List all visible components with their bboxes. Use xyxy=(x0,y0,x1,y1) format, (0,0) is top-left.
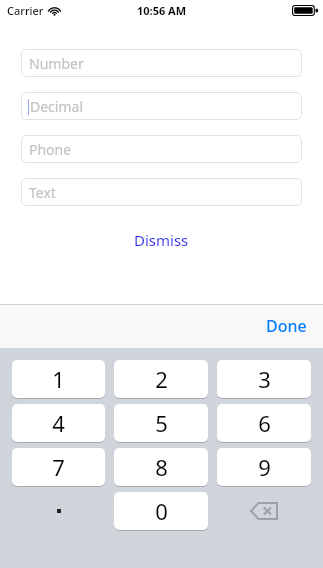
staticText: 4 xyxy=(52,408,65,438)
button[interactable]: Done xyxy=(256,309,317,343)
staticText: 9 xyxy=(258,452,271,482)
button[interactable]: Number xyxy=(21,49,302,77)
staticText: 0 xyxy=(155,496,168,526)
button[interactable]: Decimal xyxy=(21,92,302,120)
staticText: 5 xyxy=(155,408,168,438)
staticText: Done xyxy=(266,315,307,337)
staticText: Carrier xyxy=(7,3,44,18)
staticText: 6 xyxy=(258,408,271,438)
button[interactable]: Delete xyxy=(217,492,311,530)
staticText: Phone xyxy=(29,140,72,159)
staticText: Number xyxy=(29,54,84,73)
staticText: 2 xyxy=(155,364,168,394)
button[interactable]: Phone xyxy=(21,135,302,163)
staticText: 10:56 AM xyxy=(137,3,187,18)
button[interactable]: 8 xyxy=(114,448,208,486)
staticText: Decimal xyxy=(30,97,84,116)
button[interactable]: 1 xyxy=(12,360,105,398)
staticText: 7 xyxy=(52,452,65,482)
button[interactable]: 4 xyxy=(12,404,105,442)
staticText: Dismiss xyxy=(134,230,189,250)
button[interactable]: 2 xyxy=(114,360,208,398)
button[interactable]: 0 xyxy=(114,492,208,530)
staticText: Text xyxy=(29,183,56,202)
button[interactable]: 3 xyxy=(217,360,311,398)
button[interactable]: 9 xyxy=(217,448,311,486)
button[interactable]: Dismiss xyxy=(124,227,199,253)
staticText: 1 xyxy=(52,364,65,394)
button[interactable]: 5 xyxy=(114,404,208,442)
button[interactable]: 6 xyxy=(217,404,311,442)
staticText: 8 xyxy=(155,452,168,482)
button[interactable] xyxy=(12,492,105,530)
button[interactable]: Text xyxy=(21,178,302,206)
button[interactable]: 7 xyxy=(12,448,105,486)
staticText: 3 xyxy=(258,364,271,394)
